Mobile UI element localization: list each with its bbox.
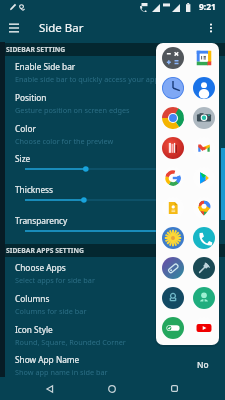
button[interactable]: Menu — [0, 14, 28, 42]
button[interactable]: Play Store — [188, 163, 219, 193]
button[interactable]: Chrome — [157, 103, 188, 133]
button[interactable]: Calculator — [157, 43, 188, 73]
button[interactable]: Maps — [188, 193, 219, 223]
staticText: Size — [15, 153, 31, 164]
staticText: Thickness — [15, 184, 54, 195]
button[interactable]: Recents — [162, 377, 187, 400]
button[interactable]: Phone — [188, 223, 219, 253]
staticText: Side Bar — [39, 20, 84, 36]
button[interactable]: Icon Style — [0, 319, 225, 350]
button[interactable]: Contacts — [188, 73, 219, 103]
button[interactable]: Transparency — [0, 211, 225, 242]
staticText: Show App Name — [15, 354, 80, 365]
button[interactable]: Keep — [157, 193, 188, 223]
button[interactable]: Color — [0, 118, 225, 149]
staticText: Round, Square, Rounded Corner — [15, 337, 126, 347]
staticText: Choose color for the preview — [15, 136, 114, 146]
button[interactable]: Gmail — [188, 133, 219, 163]
button[interactable]: Calendar — [188, 43, 219, 73]
staticText: SIDEBAR SETTING — [6, 45, 66, 54]
button[interactable]: Thickness — [0, 180, 225, 211]
staticText: Columns — [15, 293, 50, 304]
button[interactable]: Pin — [188, 253, 219, 283]
staticText: Enable side bar to quickly access your a… — [15, 74, 159, 84]
button[interactable]: Clock — [157, 73, 188, 103]
staticText: Transparency — [15, 215, 68, 226]
button[interactable]: Drive — [188, 283, 219, 313]
button[interactable]: YouTube — [188, 313, 219, 343]
button[interactable]: Files — [157, 133, 188, 163]
button[interactable]: Camera — [188, 103, 219, 133]
button[interactable]: Columns — [0, 288, 225, 319]
button[interactable]: More options — [197, 14, 225, 42]
staticText: Position — [15, 92, 47, 103]
button[interactable]: Gallery — [157, 253, 188, 283]
staticText: No — [197, 359, 209, 370]
button[interactable]: Messenger — [157, 283, 188, 313]
staticText: Select apps for side bar — [15, 275, 95, 285]
button[interactable]: Photos — [157, 223, 188, 253]
staticText: Icon Style — [15, 324, 53, 335]
staticText: SIDEBAR APPS SETTING — [6, 246, 84, 255]
staticText: Gesture position on screen edges — [15, 105, 130, 115]
button[interactable]: Enable Side bar — [0, 56, 225, 87]
button[interactable]: Tasks — [157, 313, 188, 343]
button[interactable]: Back — [37, 377, 62, 400]
button[interactable]: Google — [157, 163, 188, 193]
button[interactable]: Show App Name — [0, 350, 225, 378]
staticText: Choose Apps — [15, 262, 66, 273]
staticText: Enable Side bar — [15, 61, 76, 72]
staticText: 9:21 — [199, 1, 216, 13]
button[interactable]: Position — [0, 87, 225, 118]
staticText: Columns for side bar — [15, 306, 87, 316]
button[interactable]: Size — [0, 149, 225, 180]
staticText: Show app name in side bar — [15, 367, 108, 377]
button[interactable]: Home — [99, 377, 124, 400]
staticText: Color — [15, 123, 36, 134]
button[interactable]: Choose Apps — [0, 257, 225, 288]
